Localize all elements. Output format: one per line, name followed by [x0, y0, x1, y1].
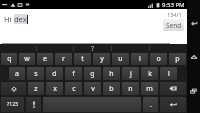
staticText: f — [72, 69, 75, 79]
staticText: q — [7, 54, 12, 64]
staticText: u — [118, 54, 123, 64]
button[interactable]: q — [1, 53, 17, 65]
staticText: a — [15, 69, 19, 79]
staticText: t — [81, 54, 84, 64]
staticText: y — [100, 54, 104, 64]
button[interactable]: n — [122, 82, 139, 95]
button[interactable]: h — [103, 67, 120, 80]
staticText: j — [130, 69, 132, 79]
staticText: l — [168, 69, 170, 79]
staticText: h — [109, 69, 114, 79]
button[interactable]: o — [150, 53, 167, 65]
button[interactable]: x — [46, 82, 63, 95]
staticText: w — [24, 54, 30, 64]
button[interactable]: t — [74, 53, 91, 65]
staticText: n — [128, 84, 133, 94]
button[interactable]: Enter — [160, 97, 186, 112]
button[interactable]: r — [55, 53, 72, 65]
button[interactable]: z — [28, 82, 44, 95]
staticText: p — [175, 54, 180, 64]
button[interactable]: e — [37, 53, 53, 65]
button[interactable]: Delete — [160, 82, 186, 95]
staticText: c — [72, 84, 76, 94]
staticText: v — [91, 84, 95, 94]
button[interactable]: f — [65, 67, 82, 80]
staticText: g — [90, 69, 95, 79]
staticText: b — [109, 84, 114, 94]
staticText: k — [148, 69, 152, 79]
staticText: 154/1 — [167, 11, 182, 18]
staticText: d — [52, 69, 57, 79]
button[interactable]: b — [103, 82, 120, 95]
staticText: o — [156, 54, 161, 64]
button[interactable]: Shift — [1, 82, 26, 95]
staticText: r — [62, 54, 65, 64]
button[interactable]: . — [143, 97, 158, 112]
button[interactable]: Space — [43, 97, 141, 112]
staticText: x — [53, 84, 57, 94]
staticText: e — [43, 54, 47, 64]
staticText: ? — [91, 44, 95, 52]
button[interactable]: a — [9, 67, 25, 80]
button[interactable]: Send — [163, 19, 184, 31]
button[interactable]: ?123 — [1, 97, 24, 112]
button[interactable]: k — [141, 67, 158, 80]
staticText: Hi — [4, 14, 14, 24]
button[interactable]: Home — [187, 46, 200, 68]
button[interactable]: i — [131, 53, 148, 65]
button[interactable]: c — [65, 82, 82, 95]
staticText: ?123 — [7, 101, 18, 108]
staticText: i — [139, 54, 141, 64]
button[interactable]: y — [93, 53, 110, 65]
button[interactable]: Back — [187, 12, 200, 34]
staticText: 9:53 PM — [162, 1, 185, 9]
staticText: s — [34, 69, 38, 79]
button[interactable]: u — [112, 53, 129, 65]
button[interactable]: Voice input — [26, 97, 41, 112]
button[interactable]: g — [84, 67, 101, 80]
staticText: . — [150, 100, 152, 110]
button[interactable]: j — [122, 67, 139, 80]
button[interactable]: l — [160, 67, 177, 80]
button[interactable]: d — [46, 67, 63, 80]
button[interactable]: ? — [74, 44, 111, 52]
staticText: Send — [166, 21, 182, 30]
button[interactable]: m — [141, 82, 158, 95]
button[interactable]: v — [84, 82, 101, 95]
staticText: dex — [14, 14, 27, 24]
button[interactable]: p — [169, 53, 186, 65]
staticText: z — [34, 84, 38, 94]
button[interactable]: s — [27, 67, 44, 80]
button[interactable]: w — [19, 53, 35, 65]
staticText: m — [146, 84, 153, 94]
button[interactable]: Recent apps — [187, 80, 200, 102]
